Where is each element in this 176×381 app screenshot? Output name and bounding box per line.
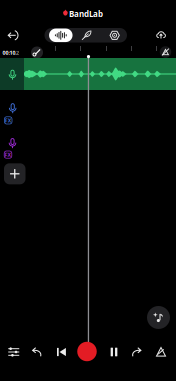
staticText: FX: [4, 151, 11, 158]
button[interactable]: Metronome: [149, 337, 172, 367]
button[interactable]: AI assistant: [146, 305, 171, 330]
staticText: 00:10: [3, 49, 16, 56]
button[interactable]: Tuner: [30, 45, 44, 59]
button[interactable]: Save to cloud: [148, 23, 174, 45]
button[interactable]: Redo: [124, 337, 147, 367]
button[interactable]: Add track: [4, 163, 25, 184]
button[interactable]: Tracks: [49, 28, 73, 42]
button[interactable]: Undo: [26, 337, 49, 367]
staticText: BandLab: [69, 9, 103, 19]
button[interactable]: Pause: [102, 337, 125, 367]
button[interactable]: Record: [74, 336, 100, 366]
button[interactable]: Skip to start: [50, 337, 73, 367]
button[interactable]: Metronome off: [157, 44, 173, 60]
staticText: FX: [5, 117, 12, 124]
button[interactable]: Effects: [103, 28, 127, 42]
button[interactable]: Mixer: [2, 337, 25, 367]
staticText: .2: [15, 49, 19, 56]
button[interactable]: Lyrics: [74, 28, 98, 42]
button[interactable]: Exit studio: [0, 24, 26, 46]
